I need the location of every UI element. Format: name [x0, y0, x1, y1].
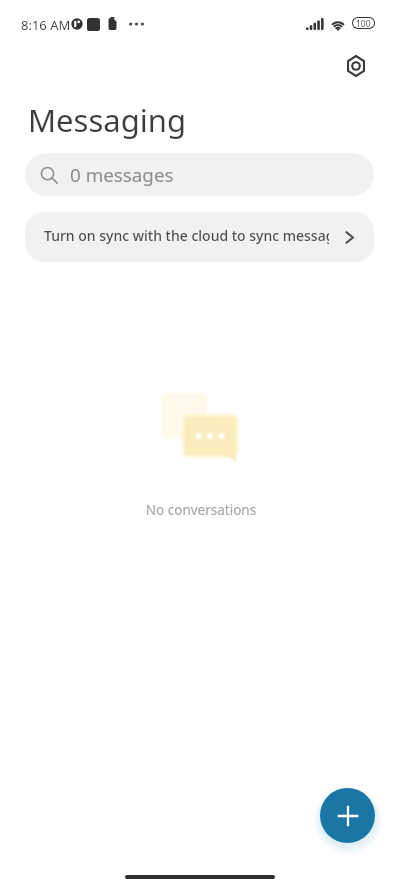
button[interactable]: New conversation	[320, 788, 375, 843]
staticText: No conversations	[1, 501, 400, 519]
staticText: 8:16 AM	[21, 16, 71, 34]
button[interactable]: Turn on sync with the cloud to sync mess…	[25, 212, 374, 262]
button[interactable]: 0 messages	[25, 153, 374, 196]
staticText: Turn on sync with the cloud to sync mess…	[44, 226, 329, 245]
staticText: 0 messages	[70, 162, 174, 188]
button[interactable]: Settings	[338, 48, 374, 84]
staticText: Messaging	[28, 99, 186, 141]
staticText: 100	[356, 18, 371, 28]
